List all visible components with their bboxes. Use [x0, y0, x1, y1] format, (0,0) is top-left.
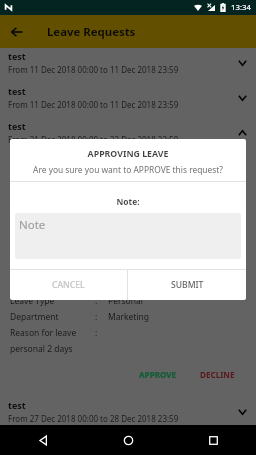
staticText: Executive [108, 279, 146, 291]
staticText: test [8, 399, 26, 411]
staticText: John Doe [108, 151, 145, 163]
staticText: Are you sure you want to APPROVE this re… [10, 164, 246, 175]
staticText: Manager [10, 231, 95, 243]
staticText: APPROVE [139, 369, 177, 380]
staticText: Pending [108, 199, 142, 211]
staticText: : [95, 311, 108, 323]
button[interactable]: DECLINE [197, 366, 238, 383]
staticText: Leave Requests [47, 24, 136, 40]
staticText: Duration [10, 215, 95, 227]
staticText: From 21 Dec 2018 00:00 to 22 Dec 2018 23… [8, 134, 179, 145]
staticText: APPROVING LEAVE [10, 148, 246, 160]
staticText: EMP0012 [108, 167, 146, 179]
staticText: Department [10, 311, 95, 323]
staticText: From 11 Dec 2018 00:00 to 11 Dec 2018 23… [8, 99, 179, 110]
button[interactable]: test [0, 397, 256, 432]
button[interactable]: Back [0, 15, 33, 48]
button[interactable]: Recents [171, 425, 256, 455]
staticText: CANCEL [52, 279, 85, 291]
staticText: Leave Type [10, 295, 95, 307]
staticText: : [95, 151, 108, 163]
button[interactable]: test [0, 118, 256, 153]
staticText: Employee [10, 151, 95, 163]
staticText: Employee No [10, 167, 95, 179]
staticText: From 11 Dec 2018 00:00 to 11 Dec 2018 23… [8, 64, 179, 75]
staticText: From 27 Dec 2018 00:00 to 28 Dec 2018 23… [8, 413, 179, 424]
button[interactable]: Note [15, 213, 241, 259]
staticText: : [95, 263, 108, 275]
button[interactable]: Back [0, 425, 86, 455]
button[interactable]: test [0, 83, 256, 118]
staticText: Note [19, 217, 46, 233]
staticText: SUBMIT [171, 279, 204, 291]
button[interactable]: test [0, 48, 256, 83]
staticText: Contact [10, 247, 95, 259]
staticText: test [8, 50, 26, 62]
staticText: Reason for leave [10, 327, 95, 339]
staticText: Designation [10, 279, 95, 291]
button[interactable]: CANCEL [10, 270, 127, 300]
staticText: Marketing [108, 311, 150, 323]
staticText: : [95, 295, 108, 307]
staticText: 13:34 [231, 2, 251, 13]
staticText: Email [10, 263, 95, 275]
button[interactable]: APPROVE [136, 366, 180, 383]
button[interactable]: Home [86, 425, 171, 455]
button[interactable]: SUBMIT [128, 270, 246, 300]
staticText: DECLINE [200, 369, 235, 380]
staticText: : [95, 167, 108, 179]
staticText: personal 2 days [10, 343, 73, 355]
staticText: Note: [10, 196, 246, 207]
staticText: john@mail.com [108, 263, 171, 275]
staticText: : [95, 327, 108, 339]
staticText: test [8, 120, 26, 132]
staticText: test [8, 85, 26, 97]
staticText: Personal [108, 295, 143, 307]
